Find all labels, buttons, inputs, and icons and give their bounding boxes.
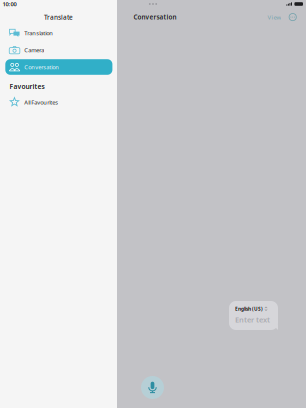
staticText: Translate bbox=[44, 13, 73, 22]
staticText: 10:00 bbox=[2, 0, 16, 8]
staticText: View bbox=[267, 13, 281, 21]
button[interactable]: More options bbox=[283, 11, 296, 23]
button[interactable]: English (US) bbox=[229, 301, 278, 330]
button[interactable]: View bbox=[265, 10, 283, 24]
staticText: Translation bbox=[24, 29, 53, 37]
button[interactable]: Camera bbox=[5, 42, 112, 58]
button[interactable]: Record audio bbox=[141, 376, 164, 399]
staticText: Camera bbox=[24, 46, 44, 54]
button[interactable]: Conversation bbox=[5, 59, 112, 75]
staticText: Conversation bbox=[24, 63, 59, 71]
button[interactable]: Translation bbox=[5, 25, 112, 41]
staticText: Favourites bbox=[9, 82, 44, 91]
staticText: All Favourites bbox=[24, 98, 58, 106]
staticText: English (US) bbox=[235, 305, 263, 312]
button[interactable]: All Favourites bbox=[5, 94, 112, 110]
staticText: Conversation bbox=[133, 13, 176, 21]
staticText: Enter text bbox=[235, 314, 270, 325]
